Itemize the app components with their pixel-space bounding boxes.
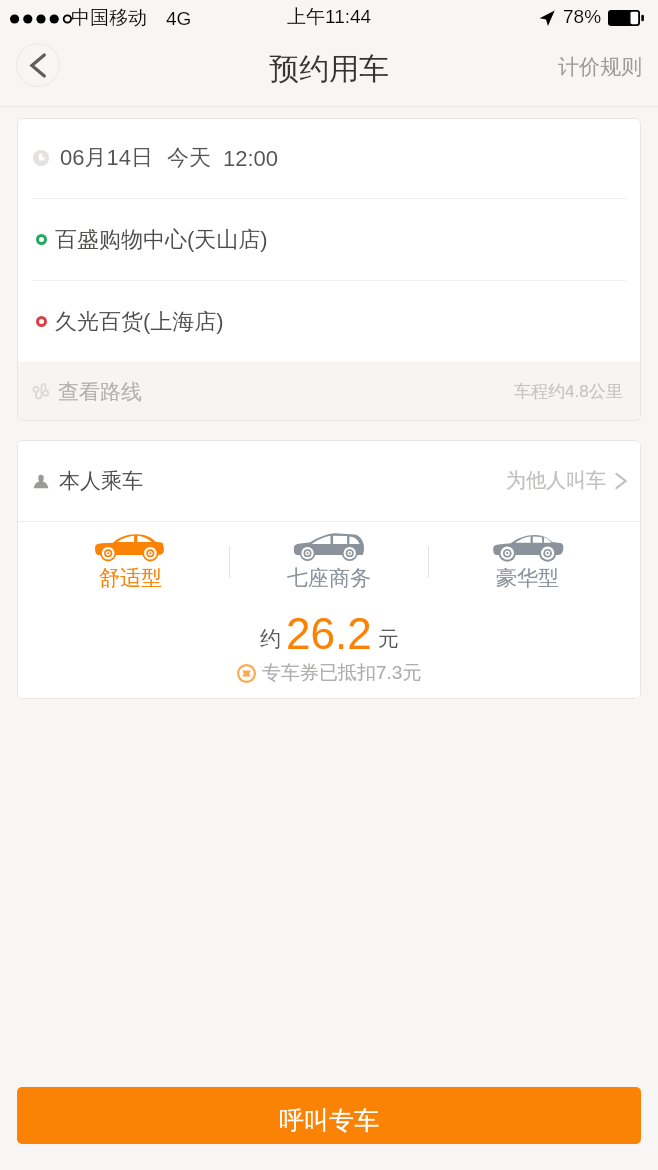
staticText: 26.2	[286, 609, 372, 658]
staticText: 12:00	[223, 146, 279, 171]
button[interactable]: 呼叫专车	[17, 1087, 641, 1144]
staticText: 为他人叫车	[506, 468, 606, 493]
staticText: 上午11:44	[287, 5, 372, 29]
staticText: 约	[260, 626, 281, 652]
staticText: 本人乘车	[59, 468, 143, 494]
button[interactable]: 为他人叫车	[506, 460, 627, 501]
staticText: 4G	[166, 8, 192, 29]
staticText: 呼叫专车	[279, 1105, 379, 1136]
button[interactable]: 豪华型	[428, 531, 627, 591]
button[interactable]: Back	[16, 43, 60, 87]
staticText: 06月14日	[60, 144, 153, 172]
staticText: 豪华型	[496, 565, 559, 591]
button[interactable]: 久光百货(上海店)	[17, 281, 641, 362]
staticText: 计价规则	[558, 54, 642, 80]
button[interactable]: 06月14日	[17, 118, 641, 198]
staticText: 预约用车	[269, 50, 389, 88]
button[interactable]: 舒适型	[31, 531, 229, 591]
button[interactable]: 查看路线	[17, 362, 641, 421]
staticText: 百盛购物中心(天山店)	[55, 226, 268, 254]
staticText: 车程约4.8公里	[514, 381, 623, 402]
staticText: 七座商务	[287, 565, 371, 591]
staticText: 元	[378, 626, 399, 652]
staticText: 查看路线	[58, 379, 142, 405]
staticText: 久光百货(上海店)	[55, 308, 224, 336]
button[interactable]: 计价规则	[558, 36, 658, 80]
button[interactable]: 百盛购物中心(天山店)	[17, 199, 641, 280]
staticText: 78%	[563, 6, 602, 27]
staticText: 今天	[167, 144, 211, 172]
staticText: 专车券已抵扣7.3元	[262, 661, 422, 685]
button[interactable]: 七座商务	[229, 531, 428, 591]
staticText: 中国移动	[71, 6, 147, 30]
staticText: 舒适型	[99, 565, 162, 591]
